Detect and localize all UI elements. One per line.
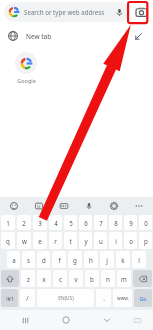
- staticText: !#1: [6, 295, 14, 302]
- button[interactable]: 8: [109, 215, 122, 230]
- button[interactable]: Change keyboard: [129, 312, 145, 328]
- button[interactable]: 4: [49, 215, 62, 230]
- button[interactable]: Home: [58, 312, 74, 328]
- button[interactable]: c: [53, 270, 67, 287]
- button[interactable]: 3: [33, 215, 47, 230]
- staticText: k: [121, 256, 125, 264]
- button[interactable]: j: [100, 251, 114, 268]
- button[interactable]: w: [17, 232, 31, 249]
- button[interactable]: 7: [94, 215, 107, 230]
- button[interactable]: i: [109, 232, 122, 249]
- staticText: 5: [69, 219, 73, 227]
- staticText: 1: [6, 219, 10, 227]
- staticText: s: [27, 256, 30, 264]
- staticText: n: [106, 275, 110, 283]
- staticText: 7: [99, 219, 103, 227]
- staticText: EN(US): [58, 295, 74, 302]
- staticText: y: [84, 237, 88, 245]
- button[interactable]: 9: [124, 215, 137, 230]
- button[interactable]: New tab: [0, 24, 153, 48]
- button[interactable]: 6: [79, 215, 92, 230]
- button[interactable]: h: [84, 251, 98, 268]
- button[interactable]: p: [139, 232, 152, 249]
- staticText: a: [12, 256, 16, 264]
- button[interactable]: Go: [134, 289, 152, 307]
- button[interactable]: a: [7, 251, 20, 268]
- staticText: j: [106, 256, 108, 264]
- staticText: q: [6, 237, 10, 245]
- staticText: o: [129, 237, 133, 245]
- button[interactable]: e: [33, 232, 47, 249]
- button[interactable]: r: [49, 232, 62, 249]
- staticText: z: [27, 275, 30, 283]
- staticText: Go: [139, 295, 147, 302]
- button[interactable]: v: [69, 270, 83, 287]
- button[interactable]: More options: [132, 199, 146, 213]
- staticText: r: [54, 237, 57, 245]
- button[interactable]: Stickers: [32, 199, 46, 213]
- button[interactable]: Hide keyboard: [99, 312, 115, 328]
- staticText: www.: [117, 295, 129, 301]
- button[interactable]: Emoji: [7, 199, 21, 213]
- button[interactable]: x: [37, 270, 51, 287]
- staticText: 2: [22, 219, 26, 227]
- button[interactable]: o: [124, 232, 137, 249]
- button[interactable]: 0: [139, 215, 152, 230]
- staticText: 8: [114, 219, 118, 227]
- button[interactable]: Google: [9, 52, 43, 84]
- staticText: m: [121, 275, 127, 283]
- button[interactable]: z: [21, 270, 35, 287]
- button[interactable]: g: [68, 251, 82, 268]
- staticText: e: [38, 237, 42, 245]
- staticText: t: [69, 237, 72, 245]
- staticText: f: [58, 256, 61, 264]
- button[interactable]: f: [52, 251, 66, 268]
- button[interactable]: 5: [64, 215, 77, 230]
- staticText: l: [138, 256, 140, 264]
- staticText: Search or type web address: [24, 8, 115, 16]
- button[interactable]: Expand: [131, 29, 145, 43]
- staticText: New tab: [26, 32, 131, 41]
- button[interactable]: Keyboard settings: [107, 199, 121, 213]
- button[interactable]: /: [20, 289, 35, 307]
- staticText: b: [90, 275, 94, 283]
- button[interactable]: l: [132, 251, 146, 268]
- staticText: u: [99, 237, 103, 245]
- button[interactable]: t: [64, 232, 77, 249]
- button[interactable]: q: [1, 232, 15, 249]
- button[interactable]: Voice input: [82, 199, 96, 213]
- button[interactable]: 2: [17, 215, 31, 230]
- staticText: c: [59, 275, 62, 283]
- staticText: .: [103, 294, 105, 302]
- staticText: 9: [129, 219, 133, 227]
- button[interactable]: GIF: [57, 199, 71, 213]
- staticText: p: [144, 237, 148, 245]
- button[interactable]: EN(US): [37, 289, 94, 307]
- button[interactable]: y: [79, 232, 92, 249]
- button[interactable]: s: [22, 251, 35, 268]
- staticText: 4: [54, 219, 58, 227]
- button[interactable]: .: [96, 289, 111, 307]
- button[interactable]: 1: [1, 215, 15, 230]
- staticText: i: [115, 237, 117, 245]
- button[interactable]: m: [117, 270, 131, 287]
- button[interactable]: Recents: [17, 312, 33, 328]
- other: Voice search: [115, 8, 124, 17]
- button[interactable]: www.: [113, 289, 132, 307]
- staticText: 0: [144, 219, 148, 227]
- button[interactable]: !#1: [1, 289, 18, 307]
- staticText: d: [42, 256, 46, 264]
- button[interactable]: Shift: [1, 270, 19, 287]
- button[interactable]: Google Lens: [133, 4, 149, 20]
- button[interactable]: Search or type web address: [4, 2, 129, 22]
- button[interactable]: Backspace: [133, 270, 152, 287]
- staticText: 6: [84, 219, 88, 227]
- staticText: h: [89, 256, 93, 264]
- staticText: g: [73, 256, 77, 264]
- button[interactable]: k: [116, 251, 130, 268]
- button[interactable]: n: [101, 270, 115, 287]
- button[interactable]: u: [94, 232, 107, 249]
- button[interactable]: b: [85, 270, 99, 287]
- button[interactable]: d: [37, 251, 50, 268]
- staticText: /: [26, 294, 29, 302]
